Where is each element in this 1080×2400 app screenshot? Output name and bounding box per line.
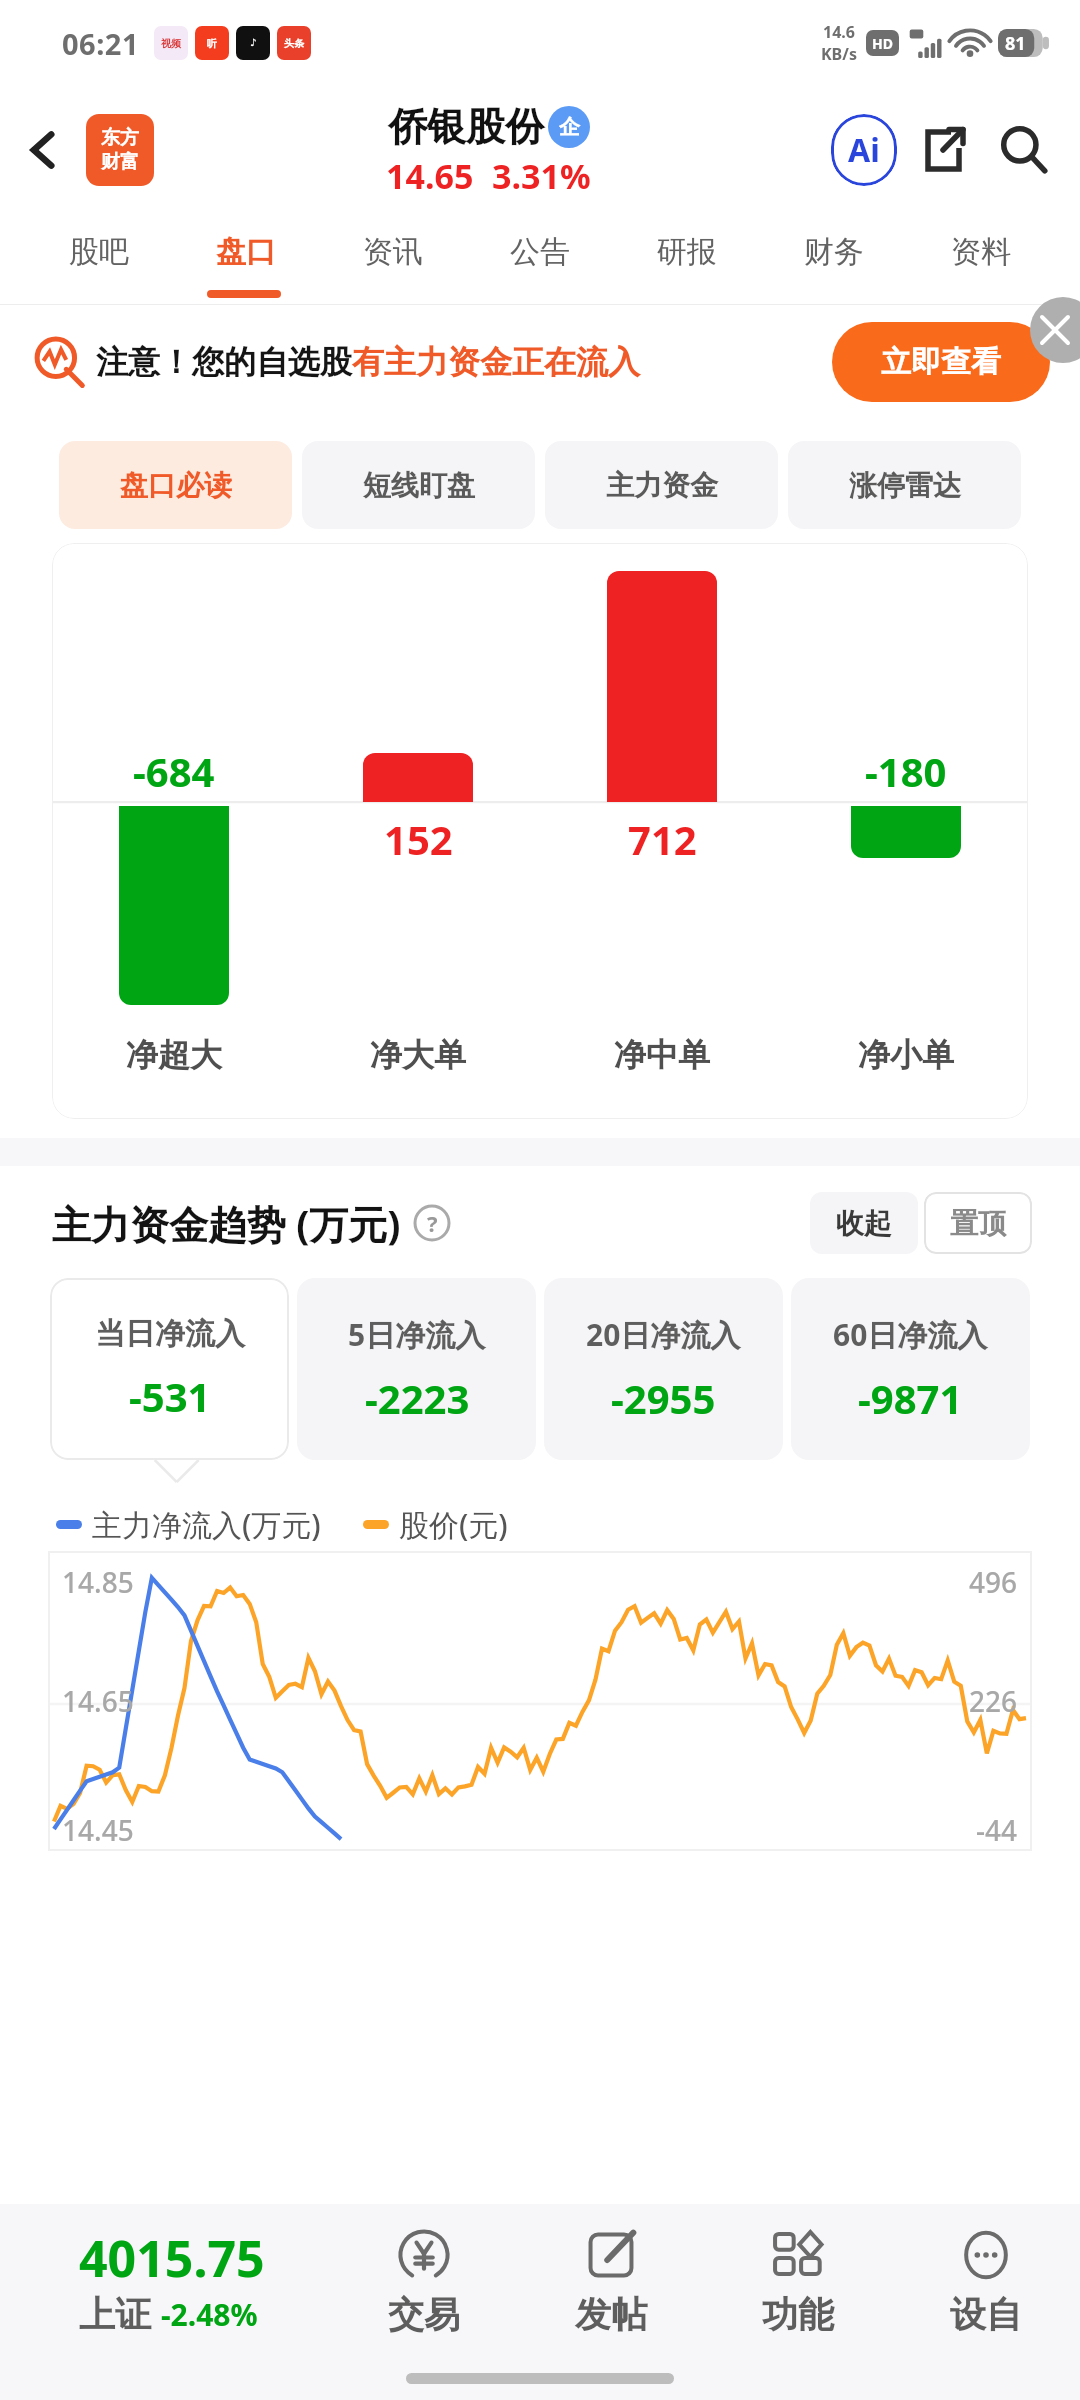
staticText: ?	[427, 1208, 438, 1238]
staticText: 14.6	[823, 21, 855, 43]
staticText: 712	[628, 812, 697, 866]
staticText: -531	[129, 1369, 211, 1423]
button[interactable]: -684	[52, 543, 1028, 1119]
button[interactable]: 4015.75	[0, 2204, 330, 2356]
staticText: 公告	[510, 233, 570, 271]
staticText: 226	[969, 1682, 1018, 1720]
staticText: 功能	[762, 2292, 834, 2337]
staticText: -684	[133, 744, 215, 798]
staticText: 14.65	[386, 153, 474, 199]
button[interactable]: 短线盯盘	[302, 441, 535, 529]
staticText: 注意！	[96, 342, 192, 382]
staticText: 主力资金趋势 (万元)	[52, 1197, 401, 1250]
button[interactable]: 侨银股份	[386, 102, 591, 199]
staticText: 立即查看	[881, 343, 1001, 381]
staticText: 收起	[836, 1206, 892, 1241]
button[interactable]: 东方	[86, 114, 154, 186]
staticText: 企	[559, 114, 580, 140]
staticText: 研报	[657, 233, 717, 271]
staticText: 财富	[101, 150, 139, 174]
button[interactable]: 5日净流入	[297, 1278, 536, 1460]
staticText: 152	[384, 812, 453, 866]
button[interactable]: 功能	[704, 2204, 892, 2356]
staticText: 上证	[79, 2292, 151, 2337]
button[interactable]: 置顶	[924, 1192, 1032, 1254]
button[interactable]: 20日净流入	[544, 1278, 783, 1460]
staticText: 3.31%	[492, 153, 591, 199]
button[interactable]: 交易	[330, 2204, 517, 2356]
staticText: 净超大	[126, 1035, 222, 1075]
button[interactable]: 发帖	[517, 2204, 704, 2356]
staticText: 盘口必读	[120, 468, 232, 503]
staticText: 81	[1005, 31, 1026, 56]
button[interactable]: 资料	[907, 214, 1054, 290]
staticText: 听	[207, 37, 217, 50]
button[interactable]: 涨停雷达	[788, 441, 1021, 529]
staticText: 净大单	[370, 1035, 466, 1075]
button[interactable]: Share	[904, 111, 982, 189]
staticText: 主力资金	[606, 468, 718, 503]
staticText: 06:21	[62, 24, 140, 63]
staticText: 有主力资金正在流入	[352, 342, 640, 382]
staticText: 60日净流入	[833, 1314, 988, 1355]
button[interactable]: Search	[982, 108, 1066, 192]
staticText: 设自	[950, 2292, 1022, 2337]
staticText: -2.48%	[161, 2294, 258, 2335]
staticText: 东方	[101, 126, 139, 150]
staticText: -2955	[611, 1371, 716, 1425]
staticText: 置顶	[950, 1206, 1006, 1241]
staticText: ♪	[250, 37, 257, 49]
staticText: 14.85	[62, 1563, 134, 1601]
staticText: 20日净流入	[586, 1314, 741, 1355]
staticText: 4015.75	[79, 2224, 265, 2292]
staticText: 您的自选股	[192, 342, 352, 382]
staticText: KB/s	[821, 43, 857, 65]
staticText: 股吧	[69, 233, 129, 271]
button[interactable]: 资讯	[319, 214, 466, 290]
staticText: 头条	[284, 37, 304, 50]
staticText: 涨停雷达	[849, 468, 961, 503]
staticText: 短线盯盘	[363, 468, 475, 503]
staticText: -44	[976, 1811, 1018, 1849]
staticText: HD	[872, 34, 893, 53]
button[interactable]: 盘口必读	[59, 441, 292, 529]
staticText: -2223	[365, 1371, 470, 1425]
staticText: 14.65	[62, 1682, 134, 1720]
staticText: Ai	[848, 128, 880, 172]
button[interactable]: 盘口	[172, 214, 319, 290]
staticText: 侨银股份	[388, 102, 544, 151]
button[interactable]: Close	[1030, 297, 1080, 363]
staticText: 14.45	[62, 1811, 134, 1849]
staticText: -9871	[858, 1371, 963, 1425]
button[interactable]: Back	[0, 86, 86, 214]
button[interactable]: 当日净流入	[50, 1278, 289, 1460]
staticText: 当日净流入	[95, 1315, 245, 1353]
staticText: 交易	[388, 2292, 460, 2337]
staticText: 股价(元)	[399, 1504, 508, 1545]
staticText: 496	[969, 1563, 1018, 1601]
staticText: 视频	[161, 37, 181, 50]
staticText: 资讯	[363, 233, 423, 271]
button[interactable]: Help	[413, 1204, 451, 1242]
staticText: 资料	[951, 233, 1011, 271]
button[interactable]: 60日净流入	[791, 1278, 1030, 1460]
button[interactable]: 公告	[466, 214, 613, 290]
button[interactable]: 研报	[613, 214, 760, 290]
button[interactable]: 财务	[760, 214, 907, 290]
staticText: 净小单	[858, 1035, 954, 1075]
button[interactable]: 设自	[892, 2204, 1080, 2356]
staticText: -180	[865, 744, 947, 798]
button[interactable]: 收起	[810, 1192, 918, 1254]
staticText: 发帖	[575, 2292, 647, 2337]
button[interactable]: AI	[824, 110, 904, 190]
staticText: 财务	[804, 233, 864, 271]
staticText: 盘口	[216, 233, 276, 271]
staticText: 5日净流入	[348, 1314, 486, 1355]
button[interactable]: 股吧	[26, 214, 172, 290]
button[interactable]: 主力资金	[545, 441, 778, 529]
button[interactable]: 注意！	[34, 305, 1080, 419]
staticText: 净中单	[614, 1035, 710, 1075]
staticText: 主力净流入(万元)	[92, 1504, 321, 1545]
button[interactable]: 立即查看	[832, 322, 1050, 402]
